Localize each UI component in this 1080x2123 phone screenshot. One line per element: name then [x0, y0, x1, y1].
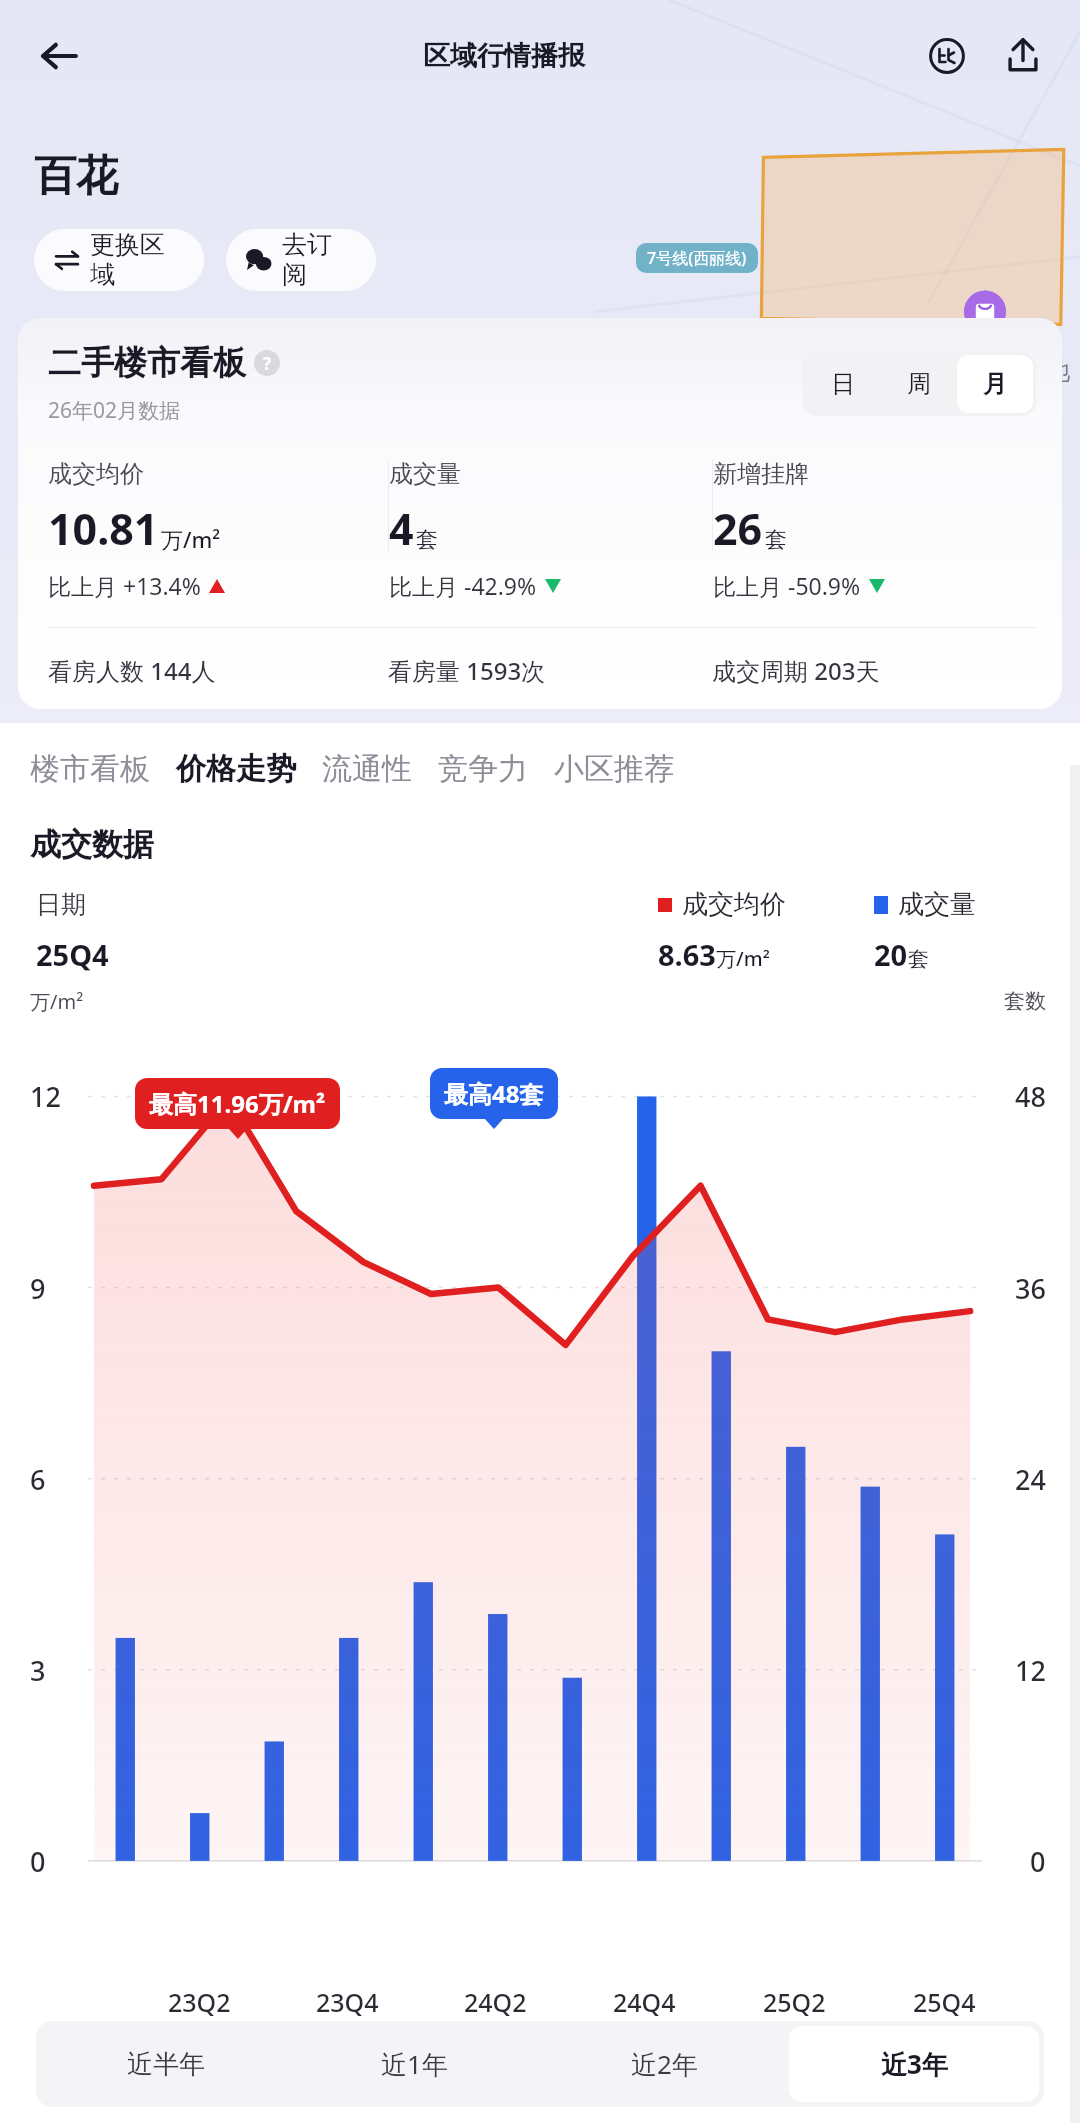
staticText: 近3年	[881, 2046, 948, 2082]
staticText: 成交周期 203天	[712, 654, 1036, 687]
button[interactable]: 近2年	[539, 2026, 789, 2102]
staticText: 26年02月数据	[48, 396, 181, 425]
staticText: 看房量 1593次	[388, 654, 712, 687]
staticText: 0	[1030, 1843, 1046, 1880]
staticText: 23Q2	[168, 1985, 231, 2019]
staticText: 8.63	[658, 935, 716, 974]
staticText: 万/m²	[30, 988, 84, 1015]
staticText: 万/m²	[161, 524, 221, 554]
staticText: 近2年	[631, 2046, 698, 2082]
staticText: 成交均价	[48, 459, 144, 489]
staticText: ?	[263, 352, 272, 375]
staticText: 12	[30, 1078, 61, 1115]
button[interactable]: 近1年	[290, 2026, 539, 2102]
staticText: 26	[713, 499, 763, 558]
button[interactable]: Share	[996, 29, 1050, 83]
staticText: 10.81	[48, 499, 159, 558]
button[interactable]: 更换区域	[34, 229, 204, 291]
button[interactable]: Help	[254, 350, 280, 376]
staticText: 竞争力	[438, 750, 528, 788]
staticText: 3	[30, 1652, 46, 1689]
staticText: 36	[1015, 1270, 1046, 1307]
button[interactable]: 流通性	[322, 750, 438, 788]
staticText: 成交量	[898, 888, 976, 921]
staticText: 25Q4	[913, 1985, 976, 2019]
staticText: 最高11.96万/m²	[149, 1087, 326, 1120]
staticText: 48	[1015, 1078, 1046, 1115]
staticText: 二手楼市看板	[48, 342, 246, 384]
staticText: 成交数据	[30, 825, 154, 864]
staticText: 比上月 -50.9%	[713, 570, 861, 601]
staticText: 比上月 -42.9%	[389, 570, 537, 601]
button[interactable]: 日	[805, 355, 881, 413]
staticText: 25Q4	[36, 935, 236, 974]
staticText: 百花	[34, 150, 118, 203]
staticText: 0	[30, 1843, 46, 1880]
staticText: 24	[1015, 1461, 1046, 1498]
staticText: 近1年	[381, 2046, 448, 2082]
staticText: 成交均价	[682, 888, 786, 921]
button[interactable]: 近半年	[41, 2026, 290, 2102]
button[interactable]: 价格走势	[176, 750, 322, 788]
staticText: 套	[765, 526, 787, 554]
staticText: 成交量	[389, 459, 461, 489]
staticText: 最高48套	[444, 1077, 544, 1110]
staticText: 套	[908, 946, 929, 972]
button[interactable]: 楼市看板	[30, 750, 176, 788]
staticText: 更换区域	[90, 229, 184, 291]
staticText: 楼市看板	[30, 750, 150, 788]
staticText: 去订阅	[282, 229, 356, 291]
button[interactable]: 月	[957, 355, 1033, 413]
staticText: 百花新天地	[950, 356, 1070, 386]
button[interactable]: 竞争力	[438, 750, 554, 788]
staticText: 20	[874, 935, 908, 974]
staticText: 看房人数 144人	[48, 654, 388, 687]
staticText: 24Q2	[464, 1985, 527, 2019]
staticText: 7号线(西丽线)	[647, 247, 747, 269]
staticText: 23Q4	[316, 1985, 379, 2019]
staticText: 9	[30, 1270, 46, 1307]
staticText: 新增挂牌	[713, 459, 809, 489]
staticText: 套数	[1004, 988, 1046, 1014]
button[interactable]: 去订阅	[226, 229, 376, 291]
staticText: 日期	[36, 889, 236, 920]
staticText: 4	[389, 499, 414, 558]
staticText: 12	[1015, 1652, 1046, 1689]
button[interactable]: Back	[30, 27, 88, 85]
staticText: 小区推荐	[554, 750, 674, 788]
staticText: 近半年	[127, 2048, 205, 2081]
button[interactable]: 周	[881, 355, 957, 413]
staticText: 万/m²	[716, 945, 770, 972]
staticText: 周	[907, 369, 931, 399]
button[interactable]: 近3年	[789, 2026, 1039, 2102]
staticText: 流通性	[322, 750, 412, 788]
staticText: 6	[30, 1461, 46, 1498]
staticText: 区域行情播报	[423, 39, 585, 73]
staticText: 价格走势	[176, 750, 296, 788]
staticText: 月	[983, 369, 1007, 399]
button[interactable]: 小区推荐	[554, 750, 674, 788]
staticText: 25Q2	[763, 1985, 826, 2019]
staticText: 比上月 +13.4%	[48, 570, 201, 601]
staticText: 日	[831, 369, 855, 399]
button[interactable]: Compare	[920, 29, 974, 83]
staticText: 套	[416, 526, 438, 554]
staticText: 24Q4	[613, 1985, 676, 2019]
